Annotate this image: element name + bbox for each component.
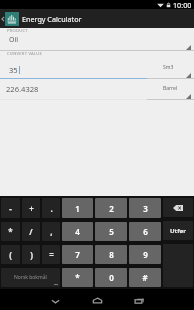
button[interactable]: , — [42, 222, 60, 241]
button[interactable]: - — [1, 198, 20, 218]
button[interactable]: 9 — [129, 245, 161, 264]
staticText: 0 — [109, 272, 114, 283]
button[interactable]: + — [22, 198, 40, 218]
button[interactable]: 3 — [129, 198, 161, 218]
staticText: + — [29, 203, 34, 214]
staticText: 6 — [143, 226, 148, 237]
staticText: PRODUCT — [7, 28, 28, 34]
staticText: 10:00 — [173, 0, 192, 9]
staticText: Sm3 — [163, 64, 174, 71]
staticText: 5 — [109, 226, 114, 237]
button[interactable]: Open dropdown — [147, 73, 194, 79]
staticText: 7 — [75, 249, 80, 260]
button[interactable]: . — [42, 198, 60, 218]
button[interactable]: Norsk bokmål — [1, 268, 60, 287]
button[interactable]: 1 — [62, 198, 93, 218]
staticText: 2 — [109, 203, 114, 214]
button[interactable]: # — [129, 268, 161, 287]
staticText: / — [29, 226, 33, 237]
staticText: 1 — [75, 203, 80, 214]
button[interactable]: * — [1, 222, 20, 241]
staticText: # — [142, 272, 148, 283]
button[interactable]: 8 — [95, 245, 127, 264]
button[interactable]: = — [42, 245, 60, 264]
staticText: 9 — [143, 249, 148, 260]
button[interactable]: ( — [1, 245, 20, 264]
button[interactable]: / — [22, 222, 40, 241]
staticText: = — [49, 249, 54, 260]
button[interactable]: 6 — [129, 222, 161, 241]
staticText: Norsk bokmål — [14, 274, 47, 281]
button[interactable]: 7 — [62, 245, 93, 264]
staticText: - — [9, 203, 12, 214]
staticText: 4 — [75, 226, 80, 237]
button[interactable]: Backspace — [163, 198, 193, 217]
button[interactable]: 5 — [95, 222, 127, 241]
staticText: , — [50, 226, 53, 237]
button[interactable]: Navigate up — [0, 9, 5, 28]
staticText: ( — [9, 249, 12, 260]
staticText: ) — [30, 249, 33, 260]
button[interactable]: Hide keyboard — [44, 289, 66, 310]
button[interactable]: Utfør — [163, 221, 193, 240]
button[interactable]: * — [62, 268, 93, 287]
button[interactable]: 0 — [95, 268, 127, 287]
staticText: Barrel — [163, 85, 178, 92]
staticText: 8 — [109, 249, 114, 260]
button[interactable]: 2 — [95, 198, 127, 218]
staticText: 35 — [9, 65, 18, 75]
button[interactable]: Open dropdown — [147, 94, 194, 100]
staticText: . — [50, 203, 53, 214]
staticText: * — [8, 226, 13, 237]
button[interactable]: Open dropdown — [0, 45, 194, 51]
button[interactable]: ) — [22, 245, 40, 264]
staticText: Energy Calculator — [22, 14, 82, 24]
button[interactable]: Recents — [128, 289, 150, 310]
staticText: Oil — [9, 35, 19, 45]
button[interactable]: Home — [86, 289, 108, 310]
staticText: 226.4328 — [6, 84, 39, 94]
staticText: * — [75, 272, 80, 283]
staticText: Utfør — [170, 227, 186, 235]
staticText: 3 — [143, 203, 148, 214]
staticText: CONVERT VALUE — [7, 51, 43, 57]
button[interactable]: 4 — [62, 222, 93, 241]
